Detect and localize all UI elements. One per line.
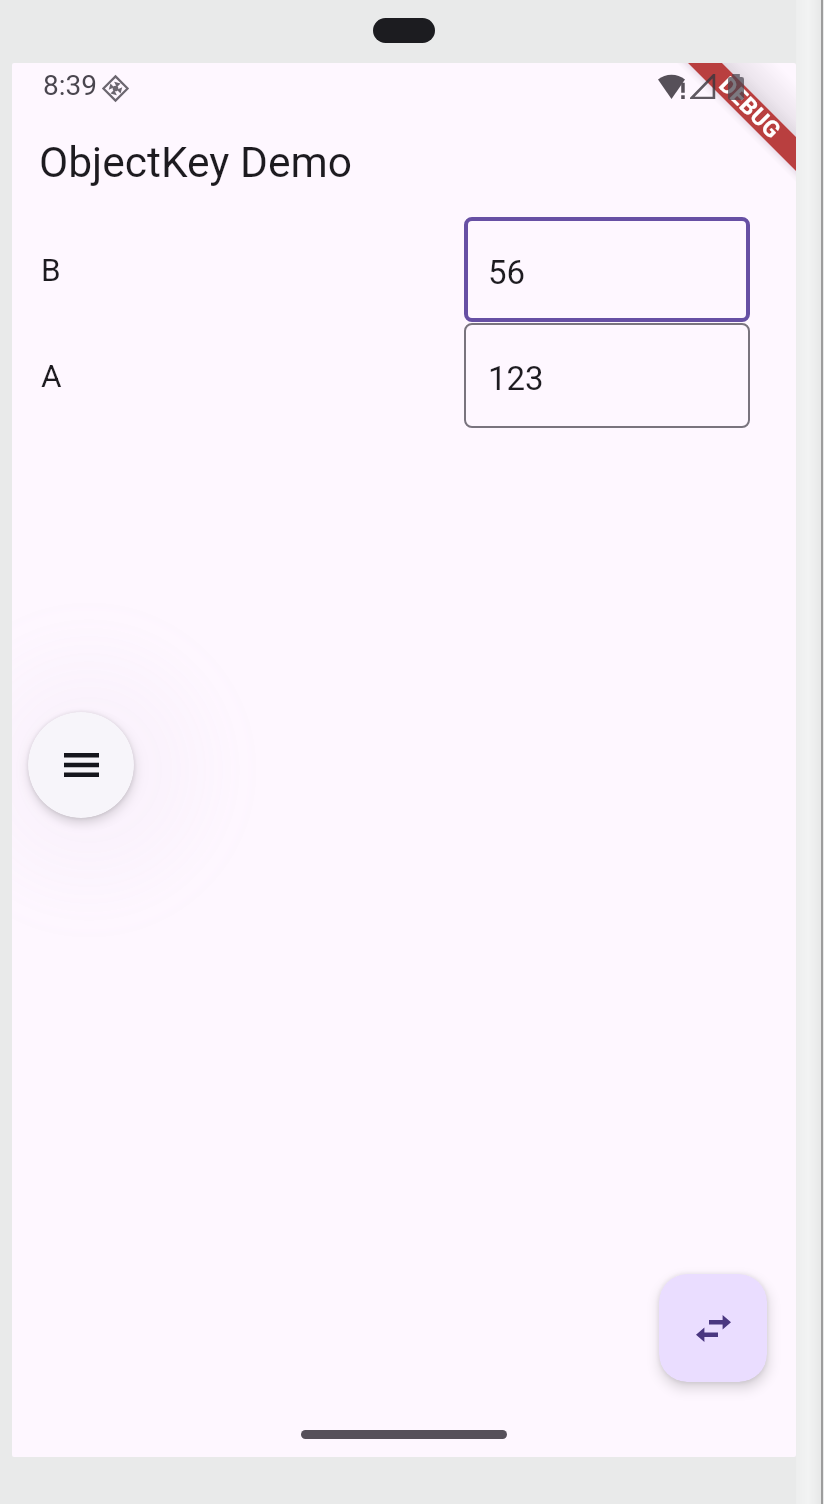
staticText: ObjectKey Demo	[39, 138, 352, 188]
button[interactable]: Swap values	[659, 1274, 767, 1382]
button[interactable]: Menu	[28, 712, 134, 818]
staticText: 123	[488, 359, 544, 398]
staticText: 56	[488, 253, 526, 292]
button[interactable]: 56	[464, 217, 750, 322]
staticText: 8:39	[43, 69, 97, 102]
staticText: B	[41, 252, 61, 289]
staticText: A	[41, 358, 62, 395]
button[interactable]: 123	[464, 323, 750, 428]
